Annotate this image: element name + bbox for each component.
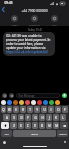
button[interactable]: I	[48, 106, 54, 113]
staticText: Text Message	[18, 94, 35, 98]
staticText: L	[62, 116, 64, 120]
staticText: C	[27, 124, 29, 128]
button[interactable]: return	[57, 130, 68, 137]
button[interactable]: Shift	[1, 122, 9, 129]
staticText: H	[41, 116, 44, 120]
staticText: I	[50, 108, 52, 112]
staticText: A	[6, 116, 8, 120]
button[interactable]: E	[13, 106, 19, 113]
button[interactable]: App	[49, 100, 54, 105]
staticText: R	[22, 108, 24, 112]
button[interactable]: App	[25, 100, 30, 105]
staticText: 09:45	[4, 1, 13, 5]
button[interactable]: L	[60, 114, 66, 121]
button[interactable]: Q	[1, 106, 6, 113]
button[interactable]: App	[19, 100, 24, 105]
staticText: V	[34, 124, 36, 128]
staticText: 123	[4, 132, 9, 135]
button[interactable]: space	[13, 130, 56, 137]
button[interactable]: Camera	[2, 93, 7, 98]
staticText: Y	[36, 108, 38, 112]
button[interactable]: Info	[48, 15, 61, 26]
button[interactable]: W	[7, 106, 12, 113]
staticText: S	[13, 116, 15, 120]
button[interactable]: C	[25, 122, 31, 129]
staticText: K	[55, 116, 57, 120]
button[interactable]: App	[7, 100, 12, 105]
button[interactable]: U	[41, 106, 47, 113]
button[interactable]: Z	[10, 122, 17, 129]
button[interactable]: G	[32, 114, 38, 121]
button[interactable]: Emoji	[2, 140, 6, 144]
button[interactable]: O	[55, 106, 61, 113]
button[interactable]: T	[27, 106, 33, 113]
staticText: Today 09:41	[27, 28, 43, 32]
button[interactable]: App	[31, 100, 36, 105]
button[interactable]: Send	[62, 93, 67, 98]
staticText: Q	[2, 108, 5, 112]
staticText: U	[43, 108, 46, 112]
button[interactable]: Back	[0, 6, 7, 13]
button[interactable]: A	[3, 114, 10, 121]
button[interactable]: V	[32, 122, 38, 129]
staticText: B	[41, 124, 43, 128]
button[interactable]: J	[46, 114, 52, 121]
button[interactable]: B	[39, 122, 45, 129]
button[interactable]: App	[1, 100, 6, 105]
staticText: O2: £41.96 was unable to process your la…	[6, 34, 52, 54]
staticText: E	[15, 108, 17, 112]
staticText: audio	[11, 23, 18, 26]
button[interactable]: D	[18, 114, 24, 121]
button[interactable]: FaceTime	[28, 15, 41, 26]
staticText: G	[34, 116, 37, 120]
button[interactable]: X	[18, 122, 24, 129]
staticText: T	[29, 108, 31, 112]
staticText: D	[20, 116, 23, 120]
button[interactable]: Delete	[60, 122, 68, 129]
button[interactable]: P	[62, 106, 68, 113]
button[interactable]: F	[25, 114, 31, 121]
button[interactable]: Dictate	[63, 140, 67, 144]
button[interactable]: S	[11, 114, 17, 121]
staticText: J	[49, 116, 50, 120]
staticText: space	[31, 132, 38, 135]
button[interactable]: App	[13, 100, 18, 105]
staticText: info	[52, 23, 57, 26]
staticText: +44 7900 000000	[21, 8, 48, 12]
button[interactable]: Text Message	[16, 93, 60, 98]
button[interactable]: App	[43, 100, 48, 105]
staticText: W	[8, 108, 11, 112]
button[interactable]: O2: £41.96 was unable to process your la…	[3, 32, 55, 56]
button[interactable]: K	[53, 114, 59, 121]
staticText: P	[64, 108, 66, 112]
button[interactable]: App	[37, 100, 42, 105]
staticText: FaceTime	[29, 23, 40, 26]
button[interactable]: App	[55, 100, 60, 105]
staticText: X	[20, 124, 22, 128]
staticText: return	[59, 132, 67, 135]
staticText: Z	[13, 124, 15, 128]
staticText: F	[27, 116, 29, 120]
button[interactable]: Apps	[9, 93, 14, 98]
button[interactable]: Audio call	[8, 15, 21, 26]
button[interactable]: H	[39, 114, 45, 121]
staticText: O	[57, 108, 60, 112]
button[interactable]: Y	[34, 106, 40, 113]
button[interactable]: 123	[1, 130, 12, 137]
button[interactable]: M	[53, 122, 59, 129]
staticText: N	[48, 124, 51, 128]
button[interactable]: R	[20, 106, 26, 113]
staticText: M	[55, 124, 58, 128]
button[interactable]: N	[46, 122, 52, 129]
